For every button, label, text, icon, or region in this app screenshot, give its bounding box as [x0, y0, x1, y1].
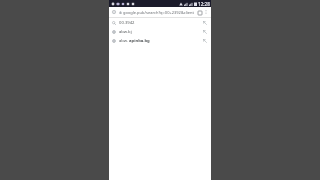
- staticText: abw.bj: [119, 29, 132, 35]
- button[interactable]: More options: [203, 9, 209, 15]
- staticText: apinba.bg: [129, 38, 150, 44]
- button[interactable]: Use suggestion: [202, 20, 208, 26]
- staticText: 00.3942: [119, 20, 135, 26]
- button[interactable]: abw.: [109, 36, 211, 45]
- button[interactable]: Use suggestion: [202, 38, 208, 44]
- button[interactable]: Use suggestion: [202, 29, 208, 35]
- button[interactable]: Page info: [109, 7, 211, 17]
- staticText: google.pub/search?q=00+2392&client: [123, 10, 196, 15]
- button[interactable]: 00.3942: [109, 18, 211, 27]
- button[interactable]: Page info: [111, 9, 117, 15]
- staticText: abw.: [119, 38, 129, 44]
- staticText: 12:28: [198, 1, 210, 7]
- button[interactable]: Switch tabs: [196, 9, 203, 16]
- button[interactable]: abw.bj: [109, 27, 211, 36]
